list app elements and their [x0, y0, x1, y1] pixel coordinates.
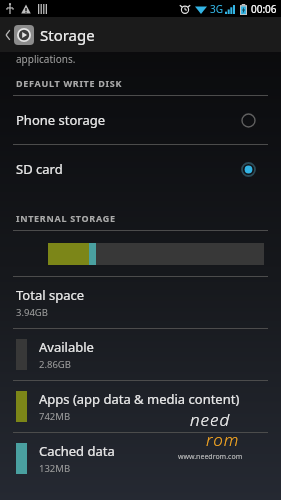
button[interactable]: Phone storage	[0, 96, 281, 144]
staticText: 3G	[210, 2, 223, 16]
staticText: Phone storage	[16, 111, 241, 129]
staticText: 742MB	[39, 410, 71, 423]
staticText: 3.94GB	[16, 306, 48, 319]
staticText: Available	[39, 338, 94, 356]
staticText: Storage	[40, 25, 95, 45]
button[interactable]: Apps (app data & media content)	[0, 381, 281, 432]
staticText: applications.	[16, 52, 76, 66]
staticText: www.needrom.com	[178, 452, 243, 462]
staticText: INTERNAL STORAGE	[16, 212, 116, 224]
staticText: need	[190, 408, 231, 431]
button[interactable]: SD card	[0, 145, 281, 193]
button[interactable]: Navigate up	[0, 25, 42, 45]
staticText: Cached data	[39, 442, 115, 460]
staticText: SD card	[16, 160, 241, 178]
button[interactable]: Cached data	[0, 433, 281, 484]
staticText: Total space	[16, 286, 84, 304]
button[interactable]: Total space	[0, 277, 281, 328]
staticText: 2.86GB	[39, 358, 71, 371]
staticText: rom	[206, 428, 240, 451]
staticText: 00:06	[251, 2, 277, 16]
staticText: 132MB	[39, 462, 71, 475]
staticText: DEFAULT WRITE DISK	[16, 77, 123, 89]
staticText: Apps (app data & media content)	[39, 390, 240, 408]
button[interactable]: Available	[0, 329, 281, 380]
